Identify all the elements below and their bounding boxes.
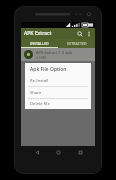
staticText: 4.6 MB <box>36 56 47 60</box>
staticText: EXTRACTED <box>67 41 87 46</box>
staticText: Apk File Option <box>30 66 67 73</box>
button[interactable]: Back <box>31 146 43 158</box>
button[interactable]: Delete file <box>25 99 91 109</box>
staticText: APK Extract <box>24 30 52 37</box>
button[interactable]: Home <box>52 146 64 158</box>
button[interactable]: APK Extract 1.0 apk <box>21 48 95 61</box>
button[interactable]: More options <box>85 30 93 38</box>
button[interactable]: INSTALLED <box>21 39 58 48</box>
staticText: Delete file <box>30 101 50 107</box>
button[interactable]: Recent apps <box>74 146 86 158</box>
button[interactable]: Re-Install <box>25 75 91 86</box>
button[interactable]: EXTRACTED <box>58 39 95 48</box>
staticText: INSTALLED <box>30 41 49 46</box>
button[interactable]: Share <box>25 87 91 98</box>
staticText: Re-Install <box>30 78 49 84</box>
button[interactable]: Search <box>75 29 85 39</box>
staticText: APK Extract 1.0 apk <box>36 50 73 55</box>
staticText: Share <box>30 90 42 96</box>
